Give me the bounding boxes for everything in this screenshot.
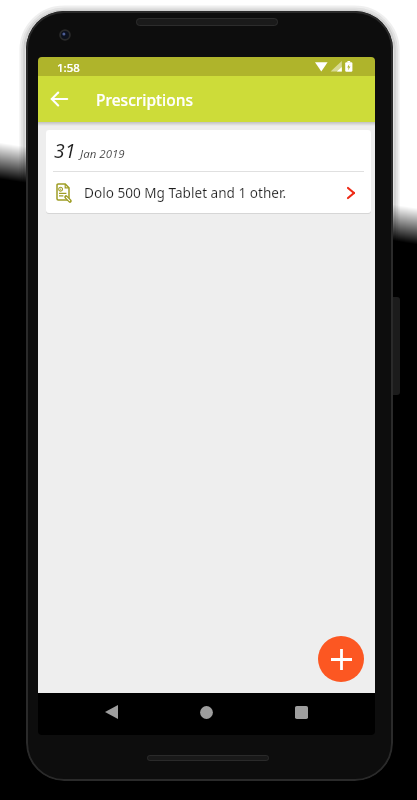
staticText: Prescriptions (96, 89, 193, 110)
staticText: Jan 2019 (80, 146, 125, 162)
button[interactable]: Dolo 500 Mg Tablet and 1 other. (46, 172, 371, 213)
staticText: Dolo 500 Mg Tablet and 1 other. (84, 183, 287, 202)
button[interactable] (182, 693, 230, 731)
staticText: 31 (54, 137, 76, 164)
button[interactable] (87, 693, 135, 731)
staticText: 1:58 (57, 60, 80, 76)
button[interactable] (318, 636, 364, 682)
button[interactable] (45, 88, 73, 110)
button[interactable] (277, 693, 325, 731)
